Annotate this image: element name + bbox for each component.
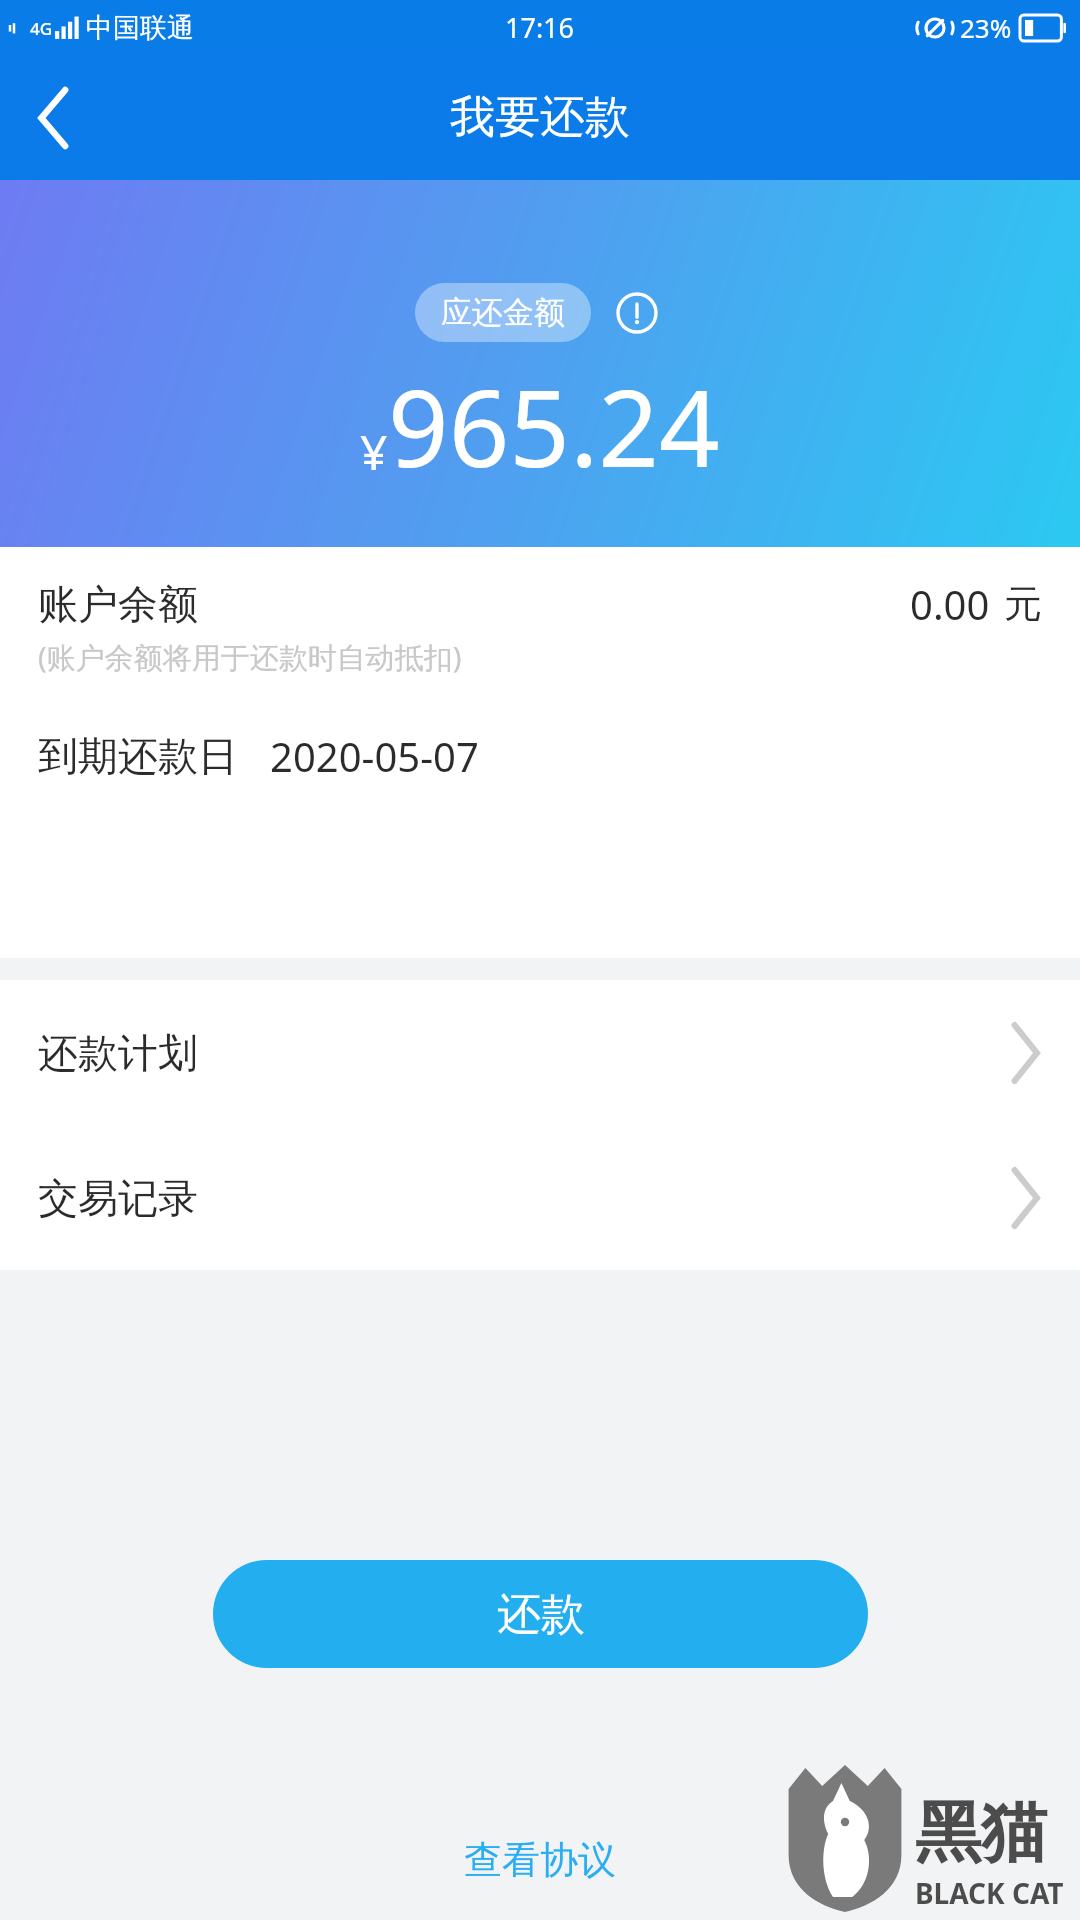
- button[interactable]: 应还金额: [441, 293, 565, 332]
- button[interactable]: 到期还款日: [0, 729, 1080, 783]
- staticText: 23%: [960, 10, 1012, 45]
- staticText: 查看协议: [464, 1836, 616, 1884]
- staticText: ¥: [360, 419, 388, 484]
- staticText: 17:16: [505, 9, 575, 46]
- staticText: BLACK CAT: [915, 1874, 1064, 1912]
- button[interactable]: Back: [0, 63, 110, 173]
- staticText: 应还金额: [441, 293, 565, 332]
- staticText: 中国联通: [86, 11, 194, 45]
- staticText: 0.00: [910, 577, 990, 631]
- staticText: 还款计划: [38, 1028, 198, 1078]
- staticText: 2020-05-07: [270, 729, 479, 783]
- staticText: 还款: [497, 1587, 585, 1642]
- staticText: 965.24: [388, 354, 720, 498]
- staticText: (账户余额将用于还款时自动抵扣): [38, 637, 462, 677]
- button[interactable]: 还款计划: [0, 980, 1080, 1125]
- button[interactable]: Amount info: [609, 285, 665, 341]
- button[interactable]: 还款: [213, 1560, 868, 1668]
- staticText: 元: [1004, 580, 1042, 628]
- staticText: 4G: [30, 17, 53, 40]
- button[interactable]: 账户余额: [0, 577, 1080, 631]
- staticText: 黑猫: [915, 1791, 1047, 1874]
- button[interactable]: 查看协议: [444, 1828, 636, 1892]
- staticText: 账户余额: [38, 579, 198, 629]
- staticText: 交易记录: [38, 1173, 198, 1223]
- staticText: 我要还款: [450, 89, 630, 146]
- button[interactable]: 交易记录: [0, 1125, 1080, 1270]
- staticText: 到期还款日: [38, 731, 238, 781]
